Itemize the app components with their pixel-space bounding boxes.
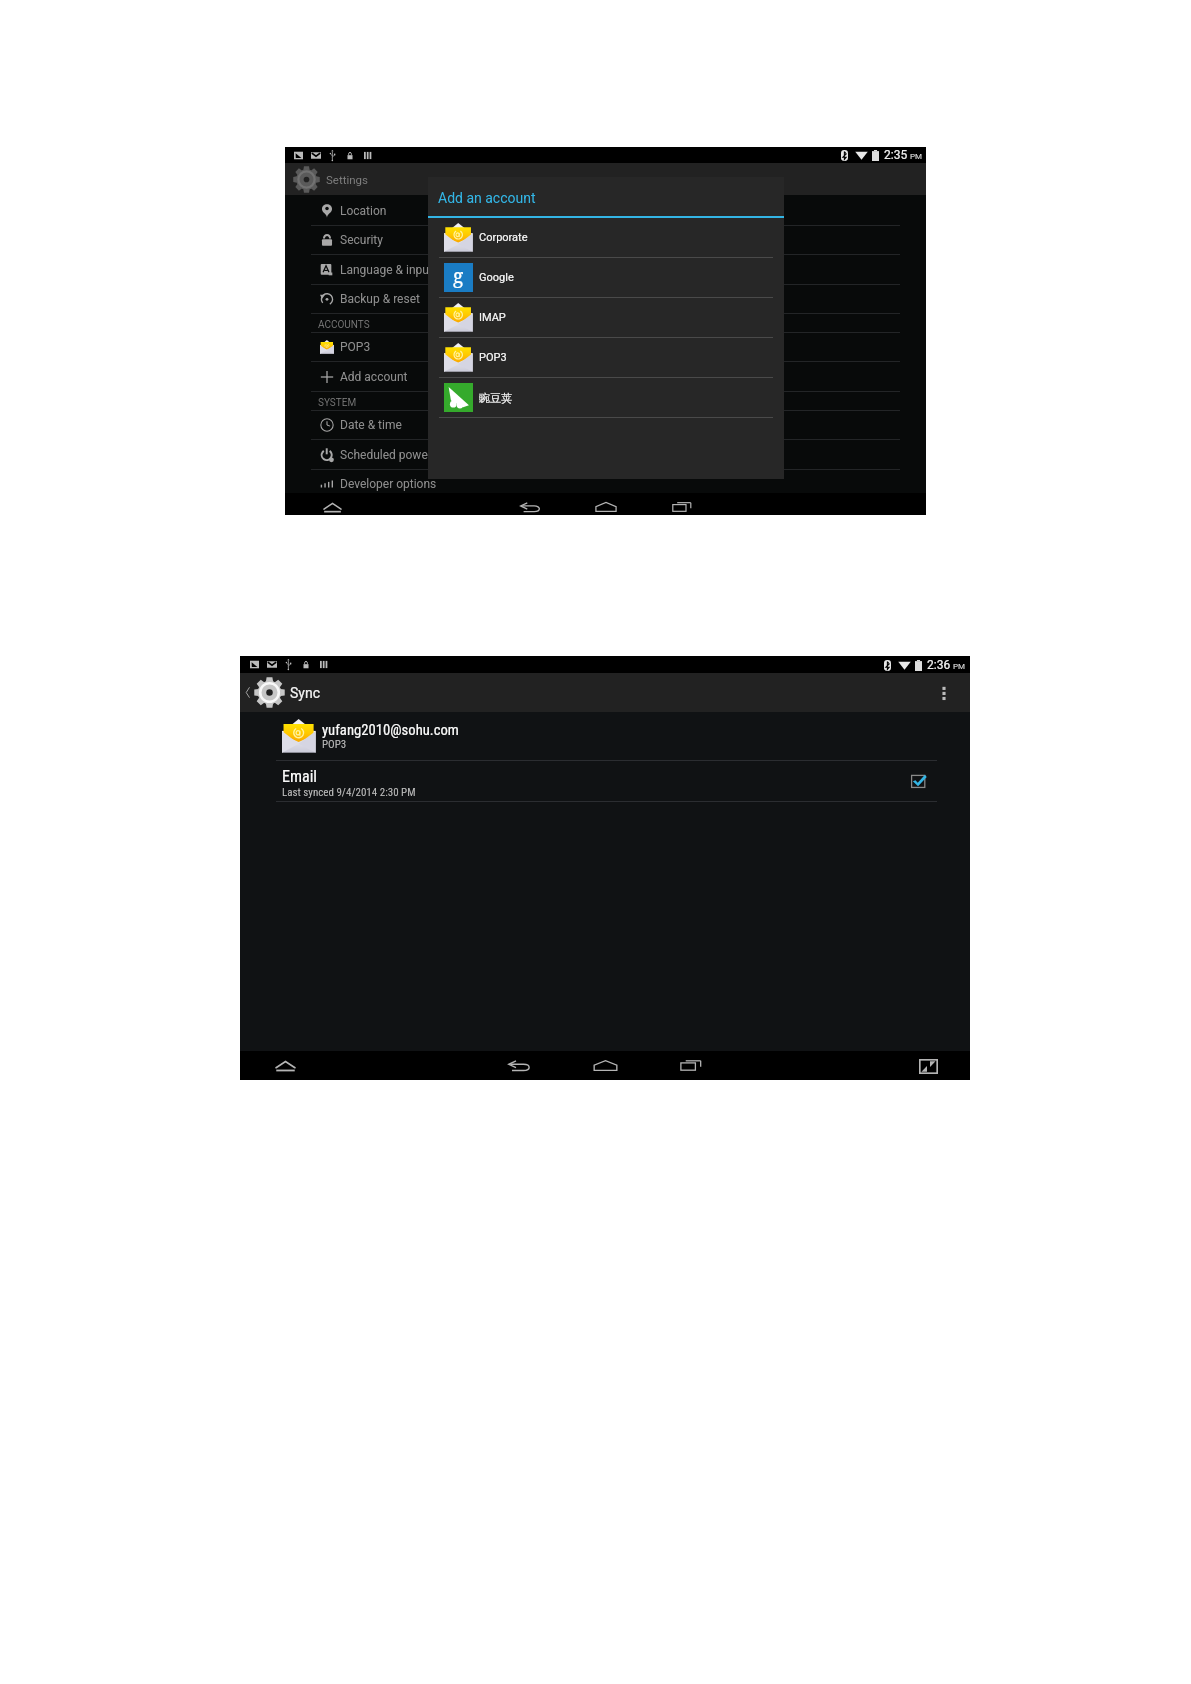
staticText: Scheduled power: [340, 448, 432, 462]
staticText: SYSTEM: [318, 397, 357, 409]
button[interactable]: Location: [285, 197, 926, 226]
staticText: Google: [479, 271, 514, 284]
staticText: IMAP: [479, 311, 506, 324]
button[interactable]: Home: [591, 496, 621, 518]
button[interactable]: Back: [515, 496, 545, 518]
button[interactable]: Recents: [676, 1051, 706, 1080]
staticText: g: [453, 263, 464, 289]
staticText: POP3: [322, 738, 347, 751]
button[interactable]: POP3: [285, 333, 926, 362]
staticText: POP3: [340, 340, 371, 354]
staticText: POP3: [479, 351, 507, 364]
button[interactable]: Developer options: [285, 470, 926, 499]
button[interactable]: Scheduled power: [285, 441, 926, 470]
staticText: yufang2010@sohu.com: [322, 721, 459, 738]
button[interactable]: IMAP: [428, 298, 784, 338]
staticText: PM: [953, 662, 966, 671]
button[interactable]: Back: [504, 1051, 534, 1080]
staticText: 2:36: [927, 658, 951, 672]
button[interactable]: 豌豆荚: [428, 378, 784, 418]
button[interactable]: Back: [240, 677, 285, 708]
button[interactable]: Date & time: [285, 411, 926, 440]
staticText: 豌豆荚: [479, 391, 512, 405]
staticText: Email: [282, 767, 318, 786]
staticText: Security: [340, 233, 383, 247]
button[interactable]: g: [428, 258, 784, 298]
staticText: Settings: [326, 173, 368, 186]
staticText: Corporate: [479, 231, 528, 244]
button[interactable]: Email: [240, 761, 970, 801]
staticText: Add an account: [438, 190, 536, 206]
button[interactable]: Up: [320, 496, 344, 518]
button[interactable]: POP3: [428, 338, 784, 378]
button[interactable]: Language & input: [285, 256, 926, 285]
staticText: Sync: [290, 685, 320, 701]
button[interactable]: More options: [926, 675, 962, 711]
staticText: PM: [910, 152, 923, 161]
staticText: Add account: [340, 370, 408, 384]
staticText: Backup & reset: [340, 292, 420, 306]
button[interactable]: Security: [285, 226, 926, 255]
staticText: 2:35: [884, 148, 908, 162]
button[interactable]: Add account: [285, 363, 926, 392]
button[interactable]: Up: [273, 1054, 297, 1078]
staticText: ACCOUNTS: [318, 319, 370, 331]
staticText: Location: [340, 204, 387, 218]
staticText: Last synced 9/4/2014 2:30 PM: [282, 786, 416, 799]
staticText: Language & input: [340, 263, 433, 277]
button[interactable]: Recents: [667, 496, 697, 518]
button[interactable]: Corporate: [428, 218, 784, 258]
button[interactable]: Expand screen: [917, 1055, 939, 1077]
staticText: Date & time: [340, 418, 402, 432]
button[interactable]: Backup & reset: [285, 285, 926, 314]
button[interactable]: Home: [590, 1051, 620, 1080]
staticText: Developer options: [340, 477, 437, 491]
